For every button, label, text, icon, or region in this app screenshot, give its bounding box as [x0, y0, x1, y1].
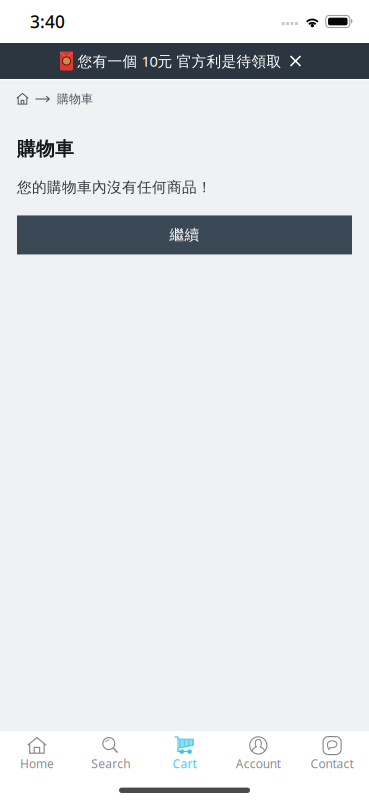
- button[interactable]: Contact: [295, 731, 369, 776]
- staticText: Account: [236, 756, 281, 771]
- button[interactable]: Close banner: [281, 47, 309, 75]
- staticText: Search: [91, 756, 130, 771]
- staticText: 您有一個 10元 官方利是待領取: [77, 51, 281, 71]
- staticText: 購物車: [17, 137, 74, 160]
- staticText: Contact: [311, 756, 354, 771]
- button[interactable]: Home: [16, 81, 35, 113]
- staticText: 購物車: [57, 92, 93, 106]
- staticText: 3:40: [30, 10, 65, 33]
- button[interactable]: Account: [221, 731, 295, 776]
- staticText: 您的購物車內沒有任何商品！: [17, 178, 212, 196]
- button[interactable]: 購物車: [51, 81, 93, 114]
- staticText: 繼續: [169, 226, 199, 244]
- button[interactable]: Home: [0, 731, 74, 776]
- button[interactable]: Cart: [148, 731, 221, 776]
- staticText: Cart: [172, 756, 196, 771]
- staticText: Home: [20, 756, 54, 771]
- button[interactable]: 繼續: [17, 215, 352, 254]
- button[interactable]: Search: [74, 731, 148, 776]
